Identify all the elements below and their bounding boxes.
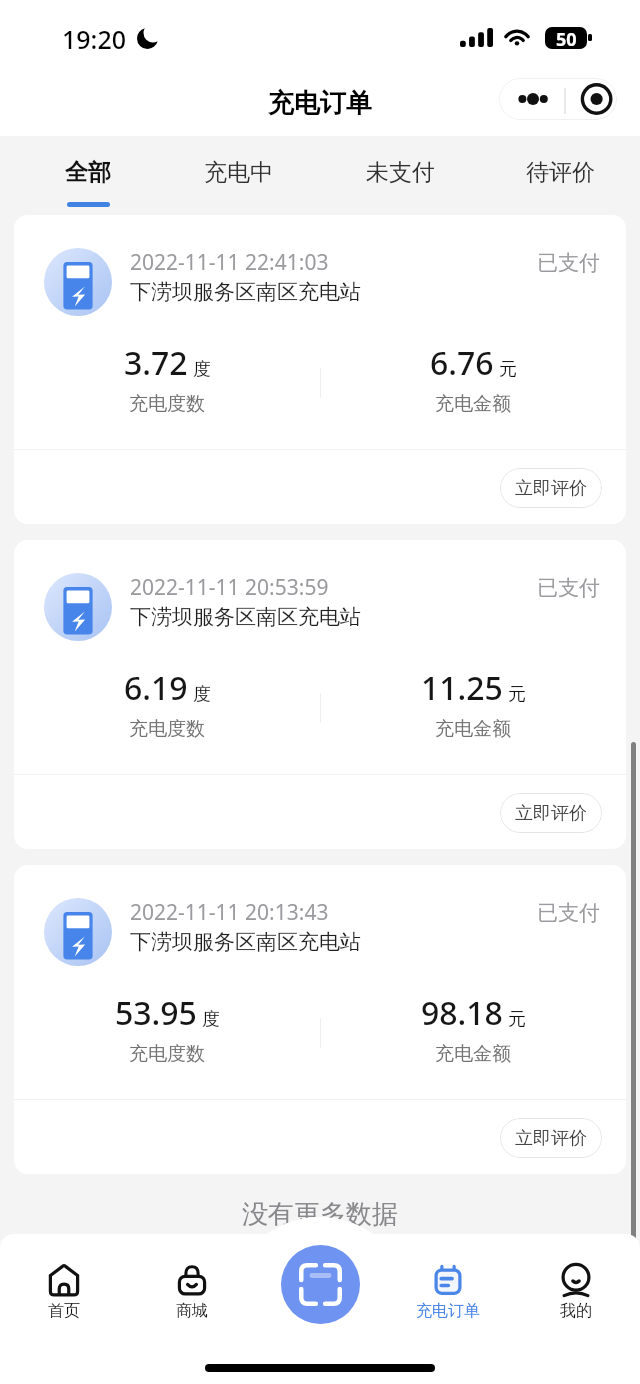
button[interactable]: 商城 <box>128 1263 256 1321</box>
staticText: 元 <box>508 1008 526 1031</box>
button[interactable]: 未支付 <box>345 136 455 215</box>
button[interactable]: 2022-11-11 20:53:59 <box>14 540 626 849</box>
staticText: 下涝坝服务区南区充电站 <box>130 604 361 630</box>
button[interactable]: 立即评价 <box>500 1118 602 1158</box>
staticText: 首页 <box>48 1301 80 1321</box>
button[interactable]: 我的 <box>512 1263 640 1321</box>
button[interactable]: 充电订单 <box>384 1263 512 1321</box>
staticText: 立即评价 <box>515 477 587 500</box>
staticText: 6.19 <box>124 666 188 710</box>
button[interactable]: 待评价 <box>505 136 615 215</box>
button[interactable]: 立即评价 <box>500 468 602 508</box>
staticText: 没有更多数据 <box>242 1198 398 1231</box>
staticText: 度 <box>202 1008 220 1031</box>
staticText: 度 <box>193 683 211 706</box>
staticText: 充电度数 <box>129 392 205 416</box>
staticText: 充电订单 <box>416 1301 480 1321</box>
staticText: 立即评价 <box>515 802 587 825</box>
staticText: 2022-11-11 20:53:59 <box>130 573 329 602</box>
staticText: 全部 <box>65 158 111 187</box>
staticText: 充电订单 <box>268 87 372 120</box>
button[interactable]: 2022-11-11 22:41:03 <box>14 215 626 524</box>
staticText: 50 <box>556 27 577 49</box>
staticText: 元 <box>508 683 526 706</box>
staticText: 98.18 <box>421 991 503 1035</box>
staticText: 已支付 <box>537 250 600 276</box>
staticText: 6.76 <box>430 341 494 385</box>
staticText: 度 <box>193 358 211 381</box>
staticText: 11.25 <box>421 666 503 710</box>
staticText: 2022-11-11 20:13:43 <box>130 898 329 927</box>
button[interactable]: Scan code <box>281 1245 360 1324</box>
staticText: 下涝坝服务区南区充电站 <box>130 929 361 955</box>
staticText: 充电度数 <box>129 717 205 741</box>
staticText: 未支付 <box>366 158 435 187</box>
button[interactable]: 全部 <box>33 136 143 215</box>
staticText: 元 <box>499 358 517 381</box>
staticText: 充电金额 <box>435 1042 511 1066</box>
staticText: 充电中 <box>204 158 273 187</box>
staticText: 已支付 <box>537 900 600 926</box>
staticText: 19:20 <box>62 22 127 56</box>
staticText: 待评价 <box>526 158 595 187</box>
staticText: 商城 <box>176 1301 208 1321</box>
button[interactable]: More options <box>499 78 617 120</box>
staticText: 3.72 <box>124 341 188 385</box>
button[interactable]: 首页 <box>0 1263 128 1321</box>
staticText: 充电金额 <box>435 717 511 741</box>
button[interactable]: 2022-11-11 20:13:43 <box>14 865 626 1174</box>
staticText: 我的 <box>560 1301 592 1321</box>
button[interactable]: 充电中 <box>183 136 293 215</box>
staticText: 下涝坝服务区南区充电站 <box>130 279 361 305</box>
button[interactable]: 立即评价 <box>500 793 602 833</box>
staticText: 53.95 <box>115 991 197 1035</box>
staticText: 充电度数 <box>129 1042 205 1066</box>
staticText: 2022-11-11 22:41:03 <box>130 248 329 277</box>
staticText: 已支付 <box>537 575 600 601</box>
staticText: 立即评价 <box>515 1127 587 1150</box>
staticText: 充电金额 <box>435 392 511 416</box>
